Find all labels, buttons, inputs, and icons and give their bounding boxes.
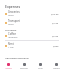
staticText: Coffee <box>8 32 16 36</box>
staticText: Today <box>8 23 14 26</box>
staticText: Explore <box>20 67 28 70</box>
staticText: Home <box>5 67 12 70</box>
staticText: Groceries <box>8 10 20 14</box>
staticText: $24.50 <box>51 12 59 15</box>
staticText: Family <box>53 67 60 70</box>
staticText: $3.20 <box>52 21 59 24</box>
staticText: Transport <box>8 19 20 23</box>
button[interactable]: Home <box>0 63 16 70</box>
staticText: Upcoming payments <box>5 56 29 59</box>
staticText: Yesterday <box>8 36 18 39</box>
staticText: This week <box>5 28 17 31</box>
button[interactable]: Transport <box>0 18 64 27</box>
staticText: Plan <box>38 67 43 70</box>
staticText: Expenses <box>5 4 21 9</box>
button[interactable]: Plan <box>32 63 48 70</box>
button[interactable]: Family <box>48 63 64 70</box>
button[interactable]: Coffee <box>0 31 64 40</box>
staticText: $5.00 <box>52 34 59 37</box>
staticText: $900 <box>53 44 59 47</box>
staticText: 1 Mar <box>8 46 14 49</box>
button[interactable]: Groceries <box>0 9 64 18</box>
button[interactable]: Rent <box>0 41 64 50</box>
staticText: Rent <box>8 42 14 46</box>
staticText: Today <box>8 14 14 17</box>
button[interactable]: Explore <box>16 63 32 70</box>
